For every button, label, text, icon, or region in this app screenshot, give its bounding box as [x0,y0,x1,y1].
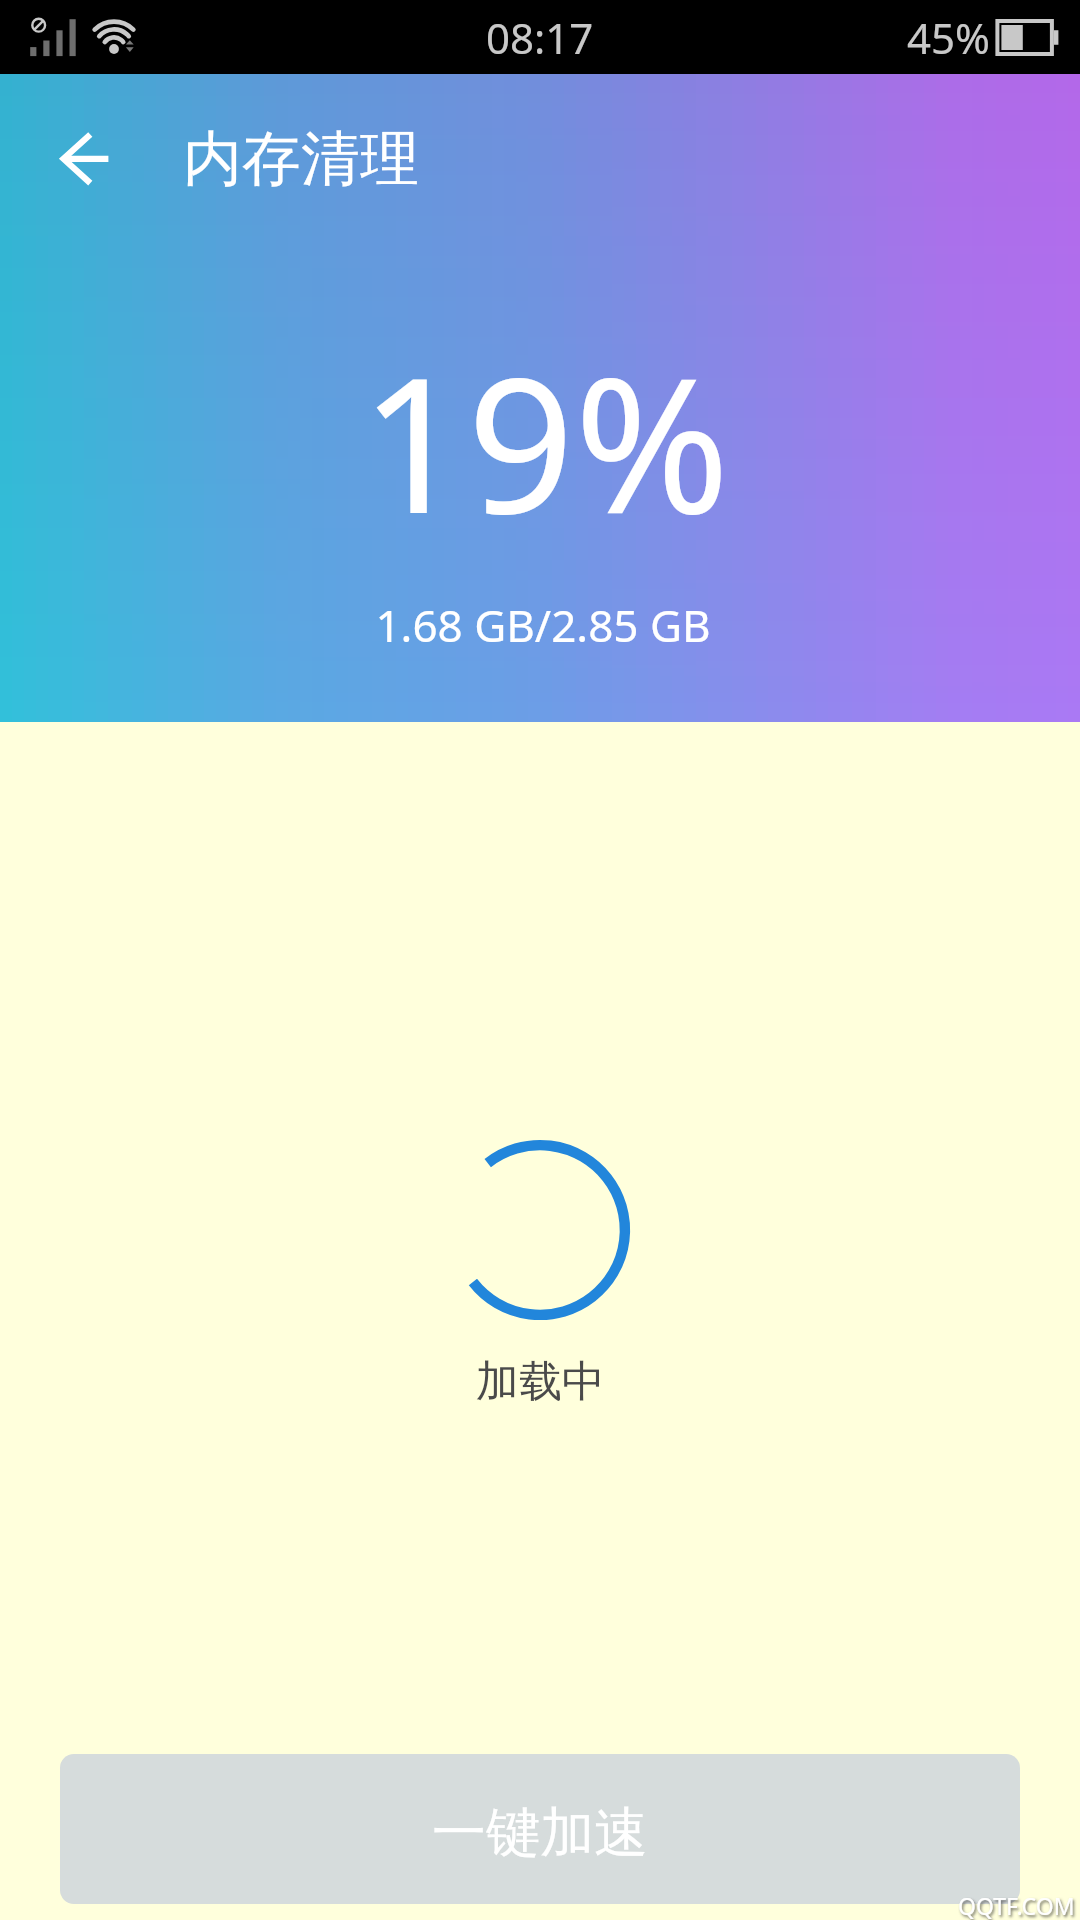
staticText: 加载中 [476,1355,605,1409]
staticText: 08:17 [486,9,594,66]
staticText: 1.68 GB/2.85 GB [375,595,711,655]
staticText: QQTF.COM [958,1890,1075,1920]
button[interactable]: Back [18,94,150,224]
staticText: 19% [360,313,730,568]
staticText: 内存清理 [183,122,419,196]
staticText: 45% [907,9,990,66]
staticText: 一键加速 [432,1799,648,1867]
button[interactable]: 一键加速 [60,1754,1020,1904]
